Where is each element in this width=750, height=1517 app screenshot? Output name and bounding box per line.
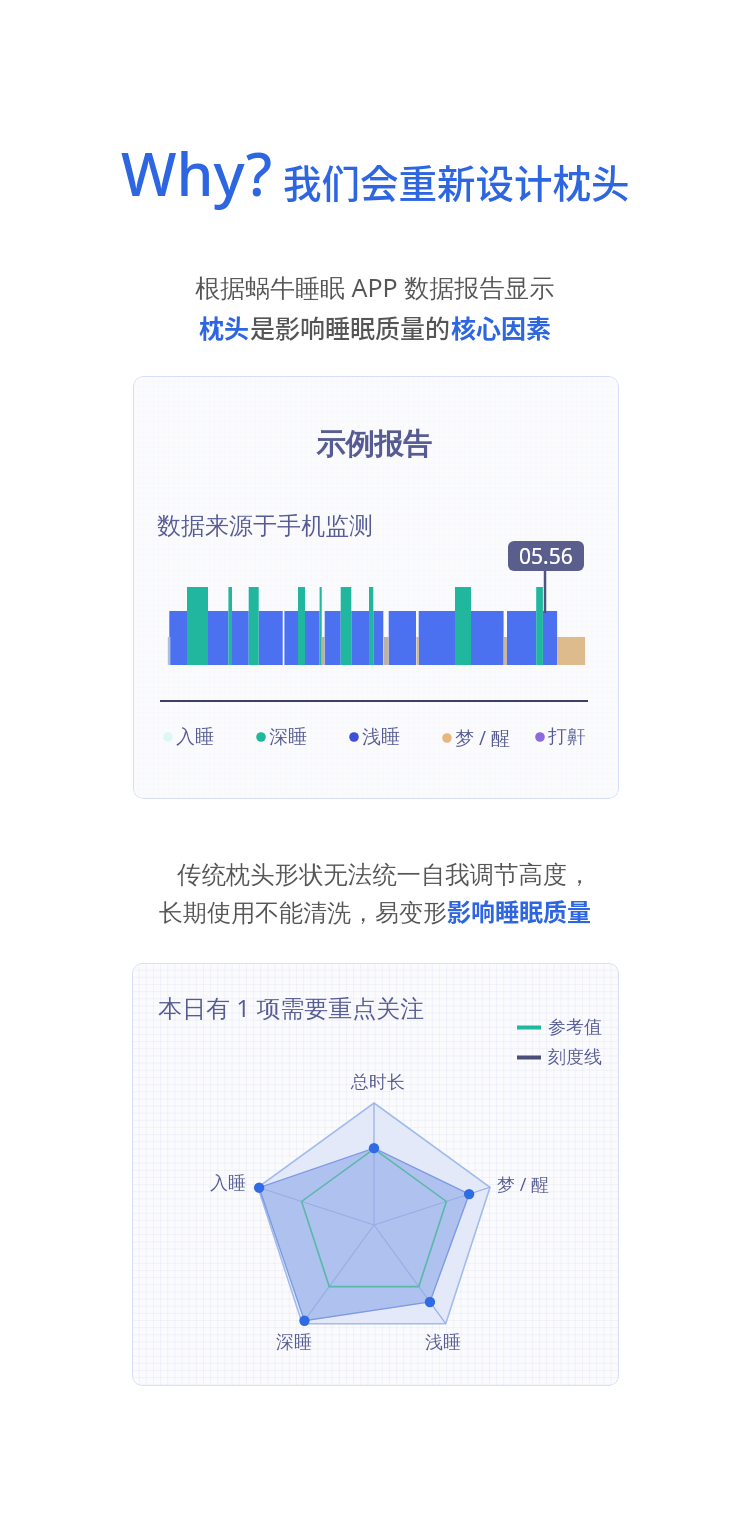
staticText: 是影响睡眠质量的 (250, 309, 451, 345)
staticText: 梦 / 醒 (497, 1172, 550, 1197)
button[interactable]: 示例报告 (133, 376, 619, 799)
button[interactable]: 参考值 (517, 1016, 602, 1039)
staticText: 入睡 (176, 725, 214, 749)
staticText: 刻度线 (548, 1046, 602, 1069)
staticText: 深睡 (269, 725, 307, 749)
staticText: 我们会重新设计枕头 (283, 153, 630, 209)
staticText: 05.56 (519, 542, 573, 571)
staticText: 传统枕头形状无法统一自我调节高度， (177, 860, 592, 891)
button[interactable]: 浅睡 (349, 725, 400, 749)
other: Sleep quality radar chart (132, 963, 619, 1386)
button[interactable]: 梦 / 醒 (442, 725, 510, 751)
staticText: 影响睡眠质量 (447, 893, 591, 928)
staticText: 深睡 (276, 1331, 312, 1354)
staticText: 核心因素 (451, 309, 552, 345)
button[interactable]: 入睡 (163, 725, 214, 749)
staticText: 入睡 (210, 1172, 246, 1195)
staticText: 浅睡 (425, 1331, 461, 1354)
staticText: 参考值 (548, 1016, 602, 1039)
button[interactable]: 刻度线 (517, 1046, 602, 1069)
staticText: 梦 / 醒 (455, 725, 510, 751)
staticText: 长期使用不能清洗，易变形 (159, 898, 447, 928)
staticText: 示例报告 (316, 426, 432, 463)
staticText: 枕头 (199, 309, 250, 345)
staticText: 数据来源于手机监测 (157, 511, 373, 541)
staticText: 本日有 1 项需要重点关注 (158, 991, 425, 1024)
staticText: 根据蜗牛睡眠 APP 数据报告显示 (195, 270, 555, 304)
staticText: 打鼾 (548, 725, 586, 749)
button[interactable]: 打鼾 (535, 725, 586, 749)
staticText: Why? (121, 133, 273, 213)
button[interactable]: 深睡 (256, 725, 307, 749)
staticText: 总时长 (351, 1071, 405, 1094)
button[interactable]: 本日有 1 项需要重点关注 (132, 963, 619, 1386)
staticText: 浅睡 (362, 725, 400, 749)
button[interactable]: 05.56 (508, 541, 584, 571)
